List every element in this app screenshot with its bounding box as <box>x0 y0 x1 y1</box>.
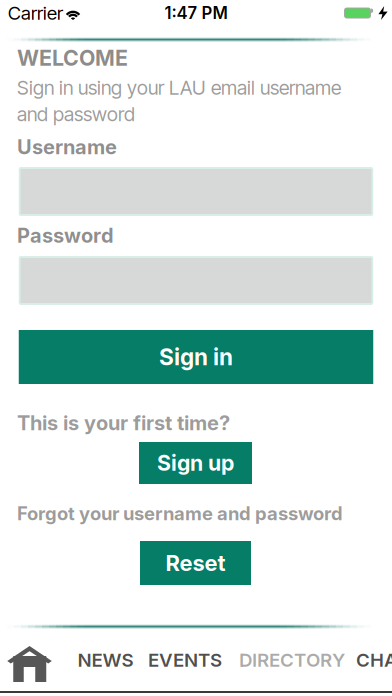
staticText: EVENTS <box>148 649 222 671</box>
staticText: Forgot your username and password <box>17 502 343 525</box>
staticText: 1:47 PM <box>164 3 227 23</box>
button[interactable]: Username text field <box>19 167 373 216</box>
button[interactable]: Home <box>4 642 55 686</box>
staticText: DIRECTORY <box>239 649 345 671</box>
staticText: WELCOME <box>17 45 128 71</box>
staticText: Username <box>17 135 117 159</box>
button[interactable]: CHANNELS <box>356 649 392 671</box>
staticText: NEWS <box>77 649 133 671</box>
staticText: CHANNELS <box>356 649 392 671</box>
button[interactable]: Sign in <box>19 330 373 384</box>
button[interactable]: Reset <box>140 541 251 585</box>
button[interactable]: Sign up <box>139 442 252 484</box>
button[interactable]: EVENTS <box>148 649 222 671</box>
staticText: Carrier <box>8 2 63 24</box>
staticText: Sign in <box>159 343 233 371</box>
staticText: This is your first time? <box>17 411 230 435</box>
staticText: Reset <box>165 550 225 576</box>
staticText: Password <box>17 223 114 248</box>
staticText: Sign in using your LAU email username an… <box>17 76 341 126</box>
button[interactable]: DIRECTORY <box>239 649 345 671</box>
button[interactable]: NEWS <box>77 649 133 671</box>
staticText: Sign up <box>157 450 234 476</box>
button[interactable]: Password text field <box>19 256 373 305</box>
